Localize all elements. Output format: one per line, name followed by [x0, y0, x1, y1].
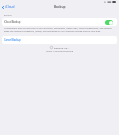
staticText: Cancel Backup	[4, 38, 21, 42]
button[interactable]: Cancel Backup	[2, 36, 117, 44]
button[interactable]: iCloud Backup	[2, 18, 117, 26]
staticText: BACKUP	[4, 14, 12, 17]
staticText: Backup	[54, 5, 66, 9]
staticText: About 1 minute remaining	[0, 50, 119, 53]
button[interactable]: iCloud	[0, 3, 18, 11]
button[interactable]: iCloud Backup toggle	[105, 20, 113, 25]
staticText: iCloud	[5, 5, 15, 9]
staticText: iCloud Backup	[4, 20, 21, 24]
staticText: Backing Up...	[54, 46, 70, 49]
staticText: Automatically back up data such as your …	[4, 27, 115, 33]
